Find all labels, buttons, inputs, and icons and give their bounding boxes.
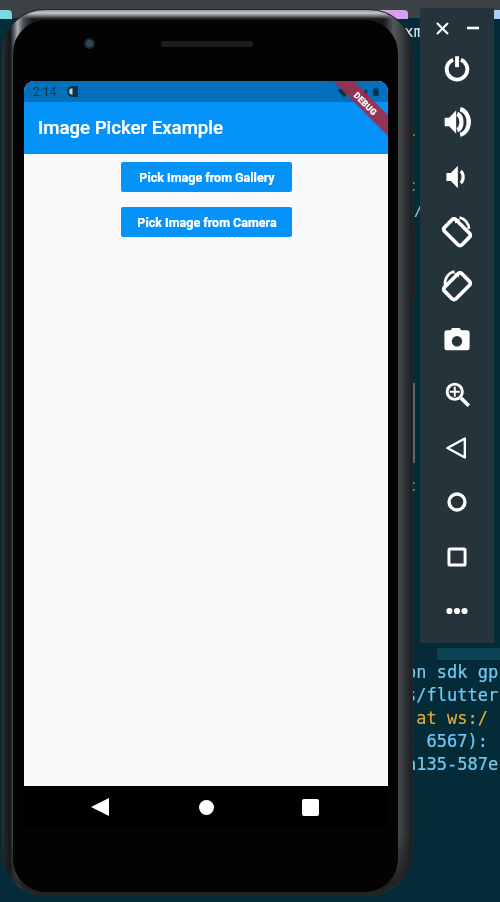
staticText: c [406,251,416,270]
staticText: DEBUG [352,90,379,118]
staticText: a135-587e [406,754,499,774]
button[interactable]: Volume down [420,150,494,204]
button[interactable]: Rotate left [420,204,494,258]
staticText: c [406,476,416,495]
staticText: . [406,351,416,370]
button[interactable]: More [420,584,494,638]
button[interactable]: Back [420,421,494,475]
staticText: xm [404,22,424,41]
button[interactable]: Pick Image from Camera [121,207,292,237]
staticText: 2:14 [33,85,57,99]
staticText: ! [406,576,416,595]
button[interactable]: Recents [290,787,330,827]
staticText: : [406,526,416,545]
staticText: 1 [406,401,416,420]
staticText: c [406,176,416,195]
button[interactable]: Home [420,475,494,529]
button[interactable]: Power [420,41,494,95]
staticText: Pick Image from Gallery [139,170,275,185]
staticText: ( 6567): [406,731,488,751]
button[interactable]: Screenshot [420,313,494,367]
button[interactable]: Volume up [420,95,494,149]
staticText: 1 [406,376,416,395]
button[interactable]: Zoom [420,367,494,421]
staticText: ~ [406,125,416,144]
button[interactable]: Home [186,787,226,827]
staticText: at ws:/ [406,708,488,728]
button[interactable]: Back [80,787,120,827]
staticText: Pick Image from Camera [137,215,277,230]
button[interactable]: Close [430,16,454,40]
staticText: 1 [406,426,416,445]
button[interactable]: Pick Image from Gallery [121,162,292,192]
staticText: s/flutter [406,685,499,705]
staticText: on sdk gp [406,662,499,682]
staticText: M [404,72,414,91]
staticText: Image Picker Example [38,117,224,139]
button[interactable]: Minimize [461,16,485,40]
button[interactable]: Rotate right [420,258,494,312]
staticText: a/ [404,201,424,220]
staticText: ' [406,226,416,245]
button[interactable]: Overview [420,530,494,584]
